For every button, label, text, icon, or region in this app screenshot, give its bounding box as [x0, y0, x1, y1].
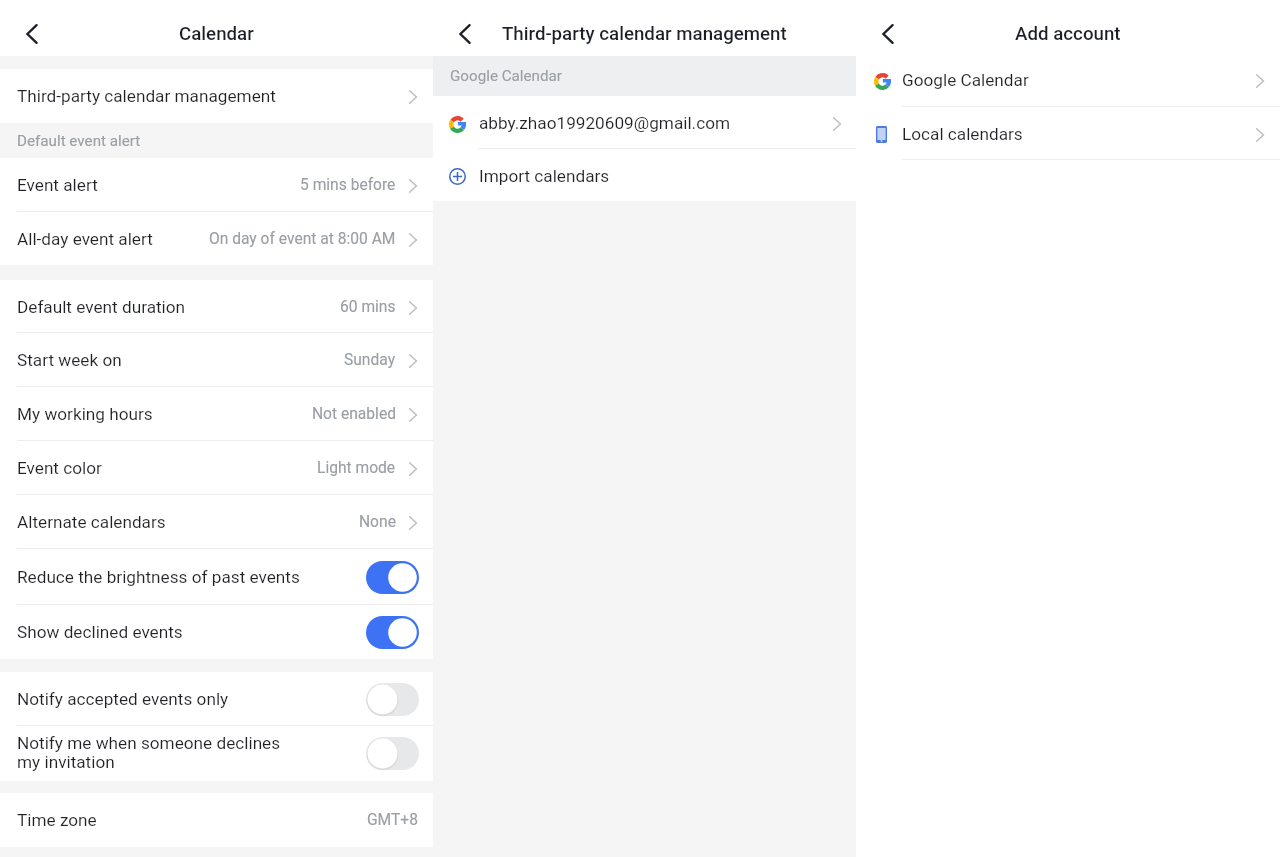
staticText: All-day event alert: [17, 229, 209, 249]
staticText: Start week on: [17, 350, 344, 370]
staticText: Event color: [17, 458, 317, 478]
staticText: Show declined events: [17, 622, 366, 642]
button[interactable]: Notify accepted events only: [0, 672, 433, 726]
staticText: Third-party calendar management: [502, 23, 787, 45]
button[interactable]: Google Calendar: [856, 56, 1280, 107]
button[interactable]: Time zone: [0, 793, 433, 847]
button[interactable]: Back: [21, 21, 43, 47]
button[interactable]: Third-party calendar management: [0, 69, 433, 123]
staticText: My working hours: [17, 404, 312, 424]
staticText: 60 mins: [340, 298, 396, 316]
button[interactable]: Back: [454, 21, 476, 47]
staticText: Alternate calendars: [17, 512, 359, 532]
staticText: Default event alert: [17, 132, 141, 150]
staticText: Light mode: [317, 459, 396, 477]
staticText: Google Calendar: [902, 70, 1253, 90]
button[interactable]: Switch on: [366, 616, 419, 649]
staticText: Notify me when someone declines my invit…: [17, 733, 366, 772]
button[interactable]: Switch off: [366, 683, 419, 716]
button[interactable]: Switch off: [366, 737, 419, 770]
staticText: Notify accepted events only: [17, 689, 366, 709]
staticText: None: [359, 513, 396, 531]
button[interactable]: Notify me when someone declines my invit…: [0, 726, 433, 781]
button[interactable]: All-day event alert: [0, 212, 433, 265]
button[interactable]: Event alert: [0, 158, 433, 212]
staticText: abby.zhao19920609@gmail.com: [479, 113, 830, 133]
button[interactable]: Reduce the brightness of past events: [0, 549, 433, 605]
staticText: Not enabled: [312, 405, 396, 423]
button[interactable]: My working hours: [0, 387, 433, 441]
button[interactable]: Event color: [0, 441, 433, 495]
button[interactable]: Default event duration: [0, 280, 433, 333]
staticText: Time zone: [17, 810, 367, 830]
staticText: 5 mins before: [300, 176, 396, 194]
staticText: Import calendars: [479, 166, 856, 186]
button[interactable]: Local calendars: [856, 107, 1280, 160]
staticText: Local calendars: [902, 124, 1253, 144]
button[interactable]: Import calendars: [433, 149, 856, 201]
button[interactable]: Back: [877, 21, 899, 47]
button[interactable]: Switch on: [366, 561, 419, 594]
staticText: On day of event at 8:00 AM: [209, 230, 396, 248]
staticText: Reduce the brightness of past events: [17, 567, 366, 587]
button[interactable]: abby.zhao19920609@gmail.com: [433, 96, 856, 149]
button[interactable]: Show declined events: [0, 605, 433, 659]
staticText: GMT+8: [367, 811, 418, 829]
staticText: Sunday: [344, 351, 396, 369]
staticText: Calendar: [179, 23, 254, 45]
button[interactable]: Alternate calendars: [0, 495, 433, 549]
staticText: Default event duration: [17, 297, 340, 317]
staticText: Add account: [1015, 23, 1121, 45]
staticText: Google Calendar: [450, 67, 562, 85]
staticText: Event alert: [17, 175, 300, 195]
button[interactable]: Start week on: [0, 333, 433, 387]
staticText: Third-party calendar management: [17, 86, 406, 106]
